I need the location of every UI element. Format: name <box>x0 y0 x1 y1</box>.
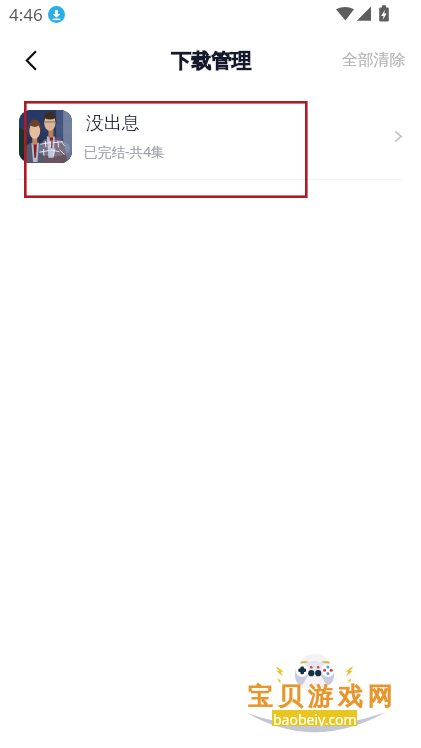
staticText: baobeiy.com <box>273 710 357 726</box>
staticText: 全部清除 <box>342 50 406 70</box>
staticText: 已完结-共4集 <box>84 142 165 161</box>
staticText: 4:46 <box>9 3 43 26</box>
button[interactable]: 没出息 <box>0 92 421 180</box>
staticText: 没出息 <box>86 112 140 135</box>
button[interactable]: 全部清除 <box>0 28 421 92</box>
staticText: 宝贝游戏网 <box>245 681 395 712</box>
button[interactable]: 返回 <box>0 28 58 92</box>
staticText: 下载管理 <box>171 49 251 74</box>
